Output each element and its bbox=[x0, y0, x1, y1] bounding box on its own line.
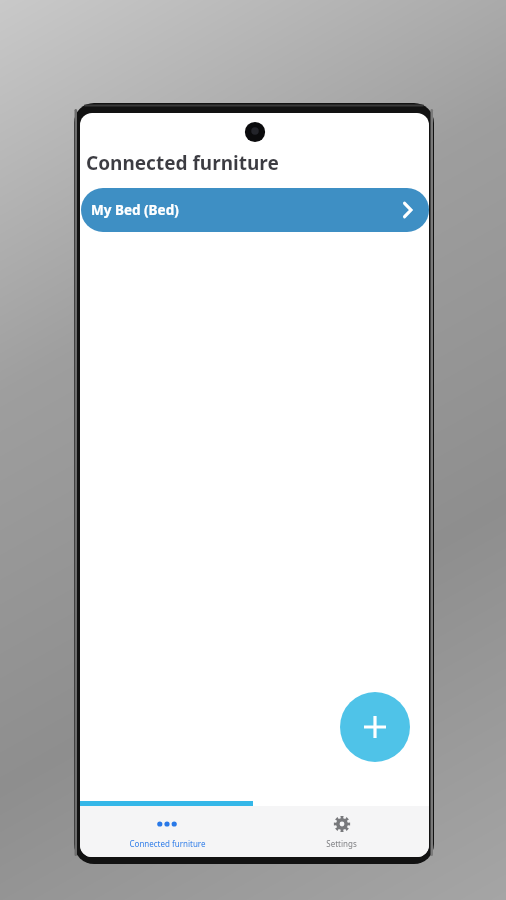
button[interactable]: Connected furniture bbox=[80, 806, 254, 849]
staticText: Connected furniture bbox=[86, 150, 279, 176]
staticText: Connected furniture bbox=[129, 838, 206, 849]
button[interactable]: My Bed (Bed) bbox=[81, 188, 429, 232]
staticText: My Bed (Bed) bbox=[91, 201, 179, 219]
button[interactable]: Add furniture bbox=[340, 692, 410, 762]
staticText: Settings bbox=[326, 838, 357, 849]
button[interactable]: Settings bbox=[254, 806, 429, 849]
